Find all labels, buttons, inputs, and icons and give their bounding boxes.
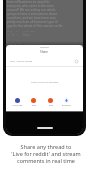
button[interactable]: More | Hello & Average (10, 58, 79, 64)
staticText: ↑ 52 ↓ Reply (7, 33, 30, 37)
staticText: Rida (32, 104, 36, 107)
staticText: Posted 4h · Chances the (7, 42, 41, 46)
staticText: Live for red… (12, 104, 24, 107)
button[interactable]: Bluetooth (58, 98, 75, 107)
button[interactable]: Rida (25, 98, 42, 107)
staticText: Rida (49, 104, 53, 107)
button[interactable]: Rida (42, 98, 59, 107)
staticText: been all business as usual for everyone,… (7, 0, 63, 28)
other: Home gesture bar (37, 127, 53, 129)
staticText: Share any thread to 'Live for reddit' an… (3, 143, 89, 164)
staticText: Bluetooth (62, 104, 71, 107)
staticText: More | Hello & Average (10, 60, 33, 63)
other: Search (74, 59, 79, 64)
staticText: Share (40, 50, 49, 54)
button[interactable]: Live for red… (9, 98, 26, 107)
staticText: Direct share not available (31, 81, 59, 84)
